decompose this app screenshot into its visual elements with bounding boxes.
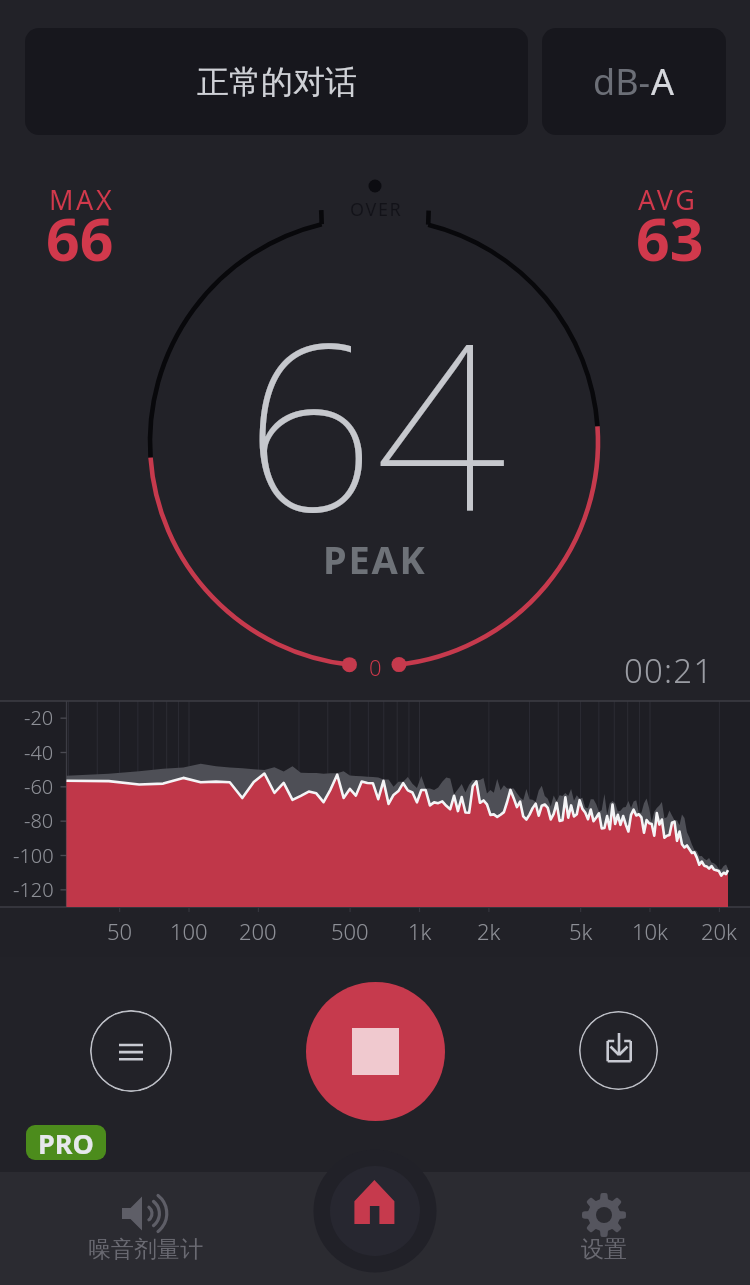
staticText: AVG <box>638 181 698 218</box>
staticText: 200 <box>239 916 277 946</box>
staticText: 0 <box>369 652 382 682</box>
staticText: 10k <box>632 916 668 946</box>
staticText: -60 <box>24 773 54 800</box>
staticText: -80 <box>24 807 54 834</box>
button[interactable]: PRO <box>26 1125 106 1160</box>
button[interactable] <box>45 1172 245 1285</box>
staticText: 00:21 <box>624 648 714 693</box>
staticText: 设置 <box>581 1235 627 1264</box>
staticText: dB- <box>593 57 651 106</box>
staticText: 63 <box>636 198 704 278</box>
staticText: OVER <box>350 197 403 222</box>
staticText: A <box>651 57 675 106</box>
button[interactable]: Home <box>313 1150 436 1273</box>
button[interactable]: Save <box>579 1011 658 1090</box>
button[interactable]: Menu <box>90 1010 172 1092</box>
staticText: -100 <box>13 842 54 869</box>
staticText: 100 <box>170 916 208 946</box>
staticText: -120 <box>13 876 54 903</box>
button[interactable]: dB- <box>542 28 726 135</box>
staticText: 5k <box>569 916 593 946</box>
staticText: 2k <box>477 916 501 946</box>
button[interactable]: Stop recording <box>306 982 445 1121</box>
staticText: PEAK <box>323 533 427 585</box>
staticText: -20 <box>24 704 54 731</box>
staticText: 正常的对话 <box>197 62 357 102</box>
staticText: MAX <box>49 181 115 218</box>
staticText: 66 <box>46 198 114 278</box>
button[interactable] <box>504 1172 704 1285</box>
staticText: 噪音剂量计 <box>88 1235 203 1264</box>
staticText: 500 <box>331 916 369 946</box>
staticText: 64 <box>244 265 507 578</box>
staticText: 20k <box>701 916 737 946</box>
staticText: PRO <box>38 1125 94 1160</box>
staticText: -40 <box>24 739 54 766</box>
staticText: 1k <box>408 916 432 946</box>
staticText: 50 <box>107 916 133 946</box>
button[interactable]: 正常的对话 <box>25 28 528 135</box>
